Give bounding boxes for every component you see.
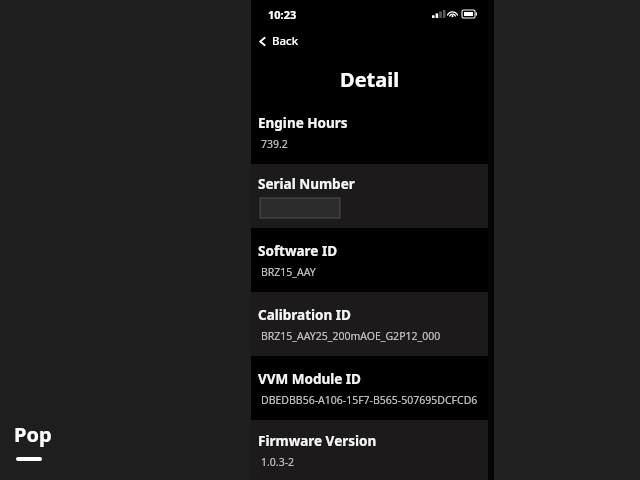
staticText: Calibration ID — [258, 306, 351, 324]
button[interactable]: Engine Hours — [251, 100, 488, 164]
staticText: 1.0.3-2 — [261, 455, 295, 469]
staticText: Pop — [14, 421, 52, 448]
button[interactable]: Back — [251, 28, 309, 54]
button[interactable]: Serial Number — [251, 164, 488, 228]
staticText: Firmware Version — [258, 432, 377, 450]
button[interactable]: VVM Module ID — [251, 356, 488, 420]
staticText: 10:23 — [268, 7, 297, 22]
staticText: Engine Hours — [258, 114, 348, 132]
staticText: Serial Number — [258, 175, 355, 193]
button[interactable]: Firmware Version — [251, 420, 488, 480]
staticText: Back — [272, 33, 299, 49]
staticText: Detail — [340, 66, 400, 93]
button[interactable]: Calibration ID — [251, 292, 488, 356]
staticText: BRZ15_AAY — [261, 265, 316, 279]
staticText: BRZ15_AAY25_200mAOE_G2P12_000 — [261, 329, 441, 343]
staticText: DBEDBB56-A106-15F7-B565-507695DCFCD6 — [261, 393, 478, 407]
staticText: VVM Module ID — [258, 370, 361, 388]
button[interactable]: Software ID — [251, 228, 488, 292]
other: Back — [257, 36, 268, 47]
staticText: 739.2 — [261, 137, 288, 151]
staticText: Software ID — [258, 242, 338, 260]
